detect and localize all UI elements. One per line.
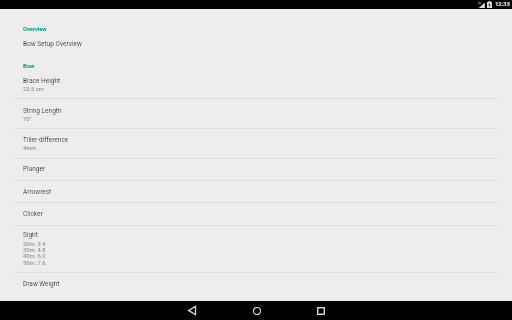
- staticText: String Length: [23, 107, 62, 115]
- button[interactable]: Bow Setup Overview: [0, 34, 512, 56]
- button[interactable]: Sight: [0, 226, 512, 272]
- button[interactable]: Clicker: [0, 203, 512, 225]
- staticText: Bow Setup Overview: [23, 40, 82, 48]
- button[interactable]: String Length: [0, 99, 512, 128]
- staticText: 12:33: [495, 1, 510, 8]
- button[interactable]: Home: [247, 301, 266, 320]
- button[interactable]: Recent apps: [311, 301, 330, 320]
- staticText: 23.5 cm: [23, 86, 44, 93]
- staticText: 50m: 7.6: [23, 260, 46, 267]
- staticText: 20m: 3.4: [23, 241, 46, 248]
- button[interactable]: Plunger: [0, 159, 512, 180]
- button[interactable]: Back: [182, 301, 201, 320]
- staticText: Draw Weight: [23, 280, 60, 288]
- staticText: Plunger: [23, 165, 46, 173]
- staticText: Arrowrest: [23, 188, 52, 196]
- staticText: Sight: [23, 231, 38, 239]
- staticText: Overview: [23, 25, 47, 32]
- staticText: 40m: 6.2: [23, 253, 46, 260]
- staticText: 30m: 4.8: [23, 247, 46, 254]
- staticText: Tiller-difference: [23, 136, 69, 144]
- staticText: Clicker: [23, 210, 43, 218]
- staticText: 70": [23, 116, 32, 123]
- button[interactable]: Brace Height: [0, 72, 512, 98]
- staticText: 4mm: [23, 145, 37, 152]
- button[interactable]: Tiller-difference: [0, 129, 512, 158]
- staticText: Brace Height: [23, 77, 61, 85]
- button[interactable]: Draw Weight: [0, 273, 512, 301]
- staticText: Bow: [23, 62, 35, 69]
- button[interactable]: Arrowrest: [0, 181, 512, 202]
